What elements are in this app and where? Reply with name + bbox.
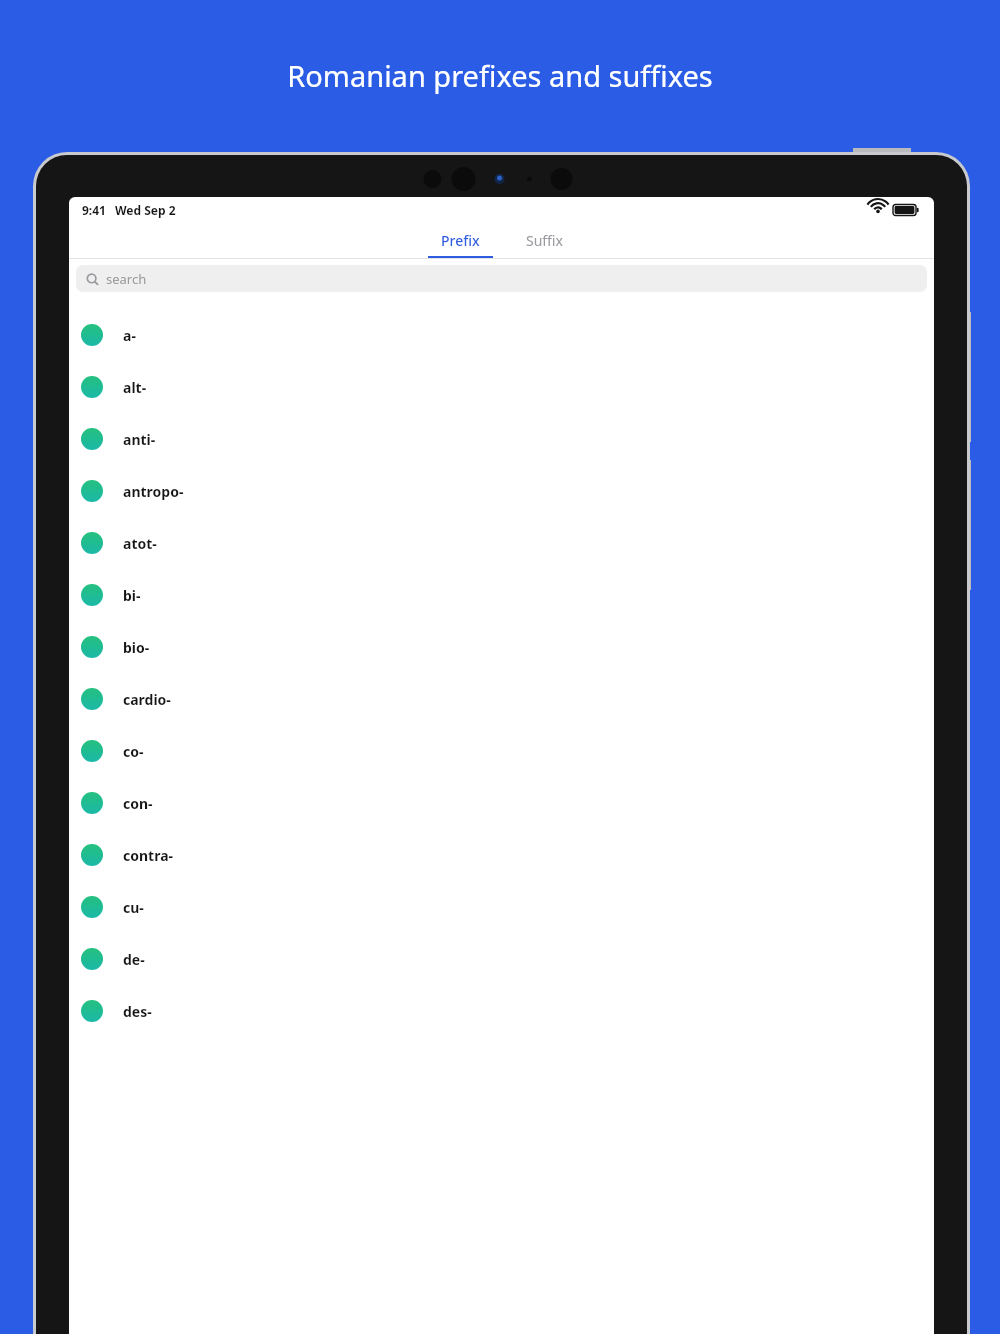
staticText: bi- [123, 586, 141, 605]
staticText: anti- [123, 430, 156, 449]
staticText: alt- [123, 378, 147, 397]
staticText: de- [123, 950, 145, 969]
button[interactable]: search [76, 265, 927, 292]
button[interactable]: Suffix [511, 223, 577, 259]
button[interactable]: cu- [69, 881, 934, 933]
staticText: bio- [123, 638, 150, 657]
staticText: atot- [123, 534, 157, 553]
button[interactable]: a- [69, 309, 934, 361]
staticText: antropo- [123, 482, 184, 501]
button[interactable]: des- [69, 985, 934, 1037]
button[interactable]: contra- [69, 829, 934, 881]
staticText: cardio- [123, 690, 171, 709]
staticText: 9:41 [82, 202, 106, 218]
button[interactable]: cardio- [69, 673, 934, 725]
button[interactable]: Prefix [427, 223, 493, 259]
button[interactable]: antropo- [69, 465, 934, 517]
staticText: a- [123, 326, 136, 345]
button[interactable]: alt- [69, 361, 934, 413]
button[interactable]: bi- [69, 569, 934, 621]
staticText: Wed Sep 2 [115, 202, 176, 218]
staticText: cu- [123, 898, 144, 917]
staticText: Prefix [441, 231, 480, 250]
staticText: co- [123, 742, 144, 761]
staticText: Suffix [526, 231, 563, 250]
staticText: contra- [123, 846, 173, 865]
staticText: search [106, 270, 147, 288]
button[interactable]: con- [69, 777, 934, 829]
staticText: des- [123, 1002, 152, 1021]
button[interactable]: bio- [69, 621, 934, 673]
staticText: Romanian prefixes and suffixes [287, 56, 713, 95]
staticText: con- [123, 794, 153, 813]
button[interactable]: de- [69, 933, 934, 985]
button[interactable]: co- [69, 725, 934, 777]
button[interactable]: atot- [69, 517, 934, 569]
button[interactable]: anti- [69, 413, 934, 465]
